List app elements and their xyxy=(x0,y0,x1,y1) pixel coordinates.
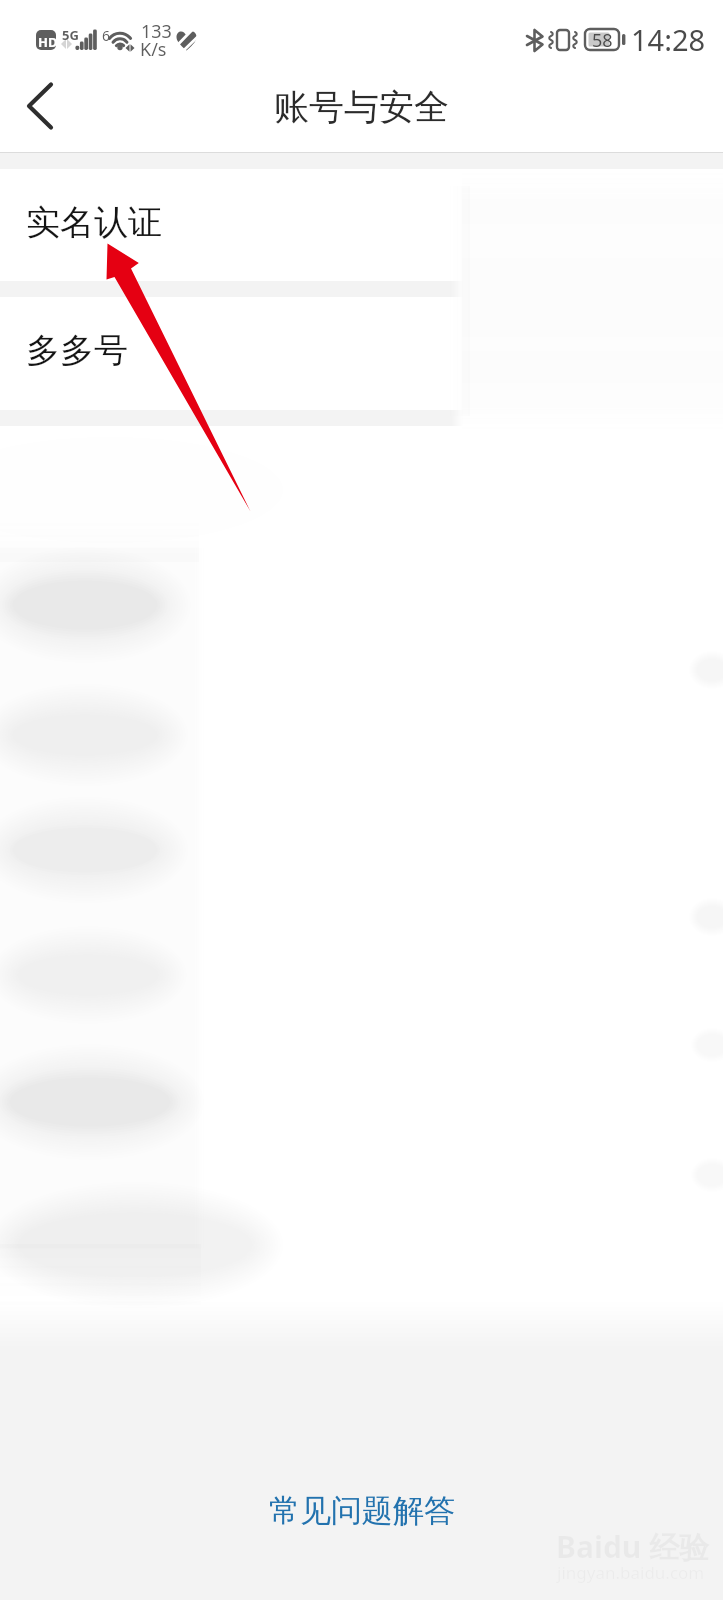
staticText: 5G xyxy=(62,26,79,44)
button[interactable]: 常见问题解答 xyxy=(255,1482,469,1539)
staticText: 实名认证 xyxy=(26,201,162,244)
staticText: HD xyxy=(38,33,58,51)
staticText: 133 xyxy=(141,19,172,44)
staticText: K/s xyxy=(140,37,167,62)
staticText: 6 xyxy=(102,26,111,45)
staticText: 常见问题解答 xyxy=(269,1491,455,1530)
staticText: 账号与安全 xyxy=(274,85,449,129)
staticText: 多多号 xyxy=(26,329,128,372)
button[interactable]: 多多号 xyxy=(0,297,723,410)
staticText: 14:28 xyxy=(631,20,706,59)
staticText: 58 xyxy=(592,28,613,53)
button[interactable]: 实名认证 xyxy=(0,169,723,281)
button[interactable]: Back xyxy=(0,76,72,148)
staticText: Baidu 经验 xyxy=(556,1526,710,1567)
